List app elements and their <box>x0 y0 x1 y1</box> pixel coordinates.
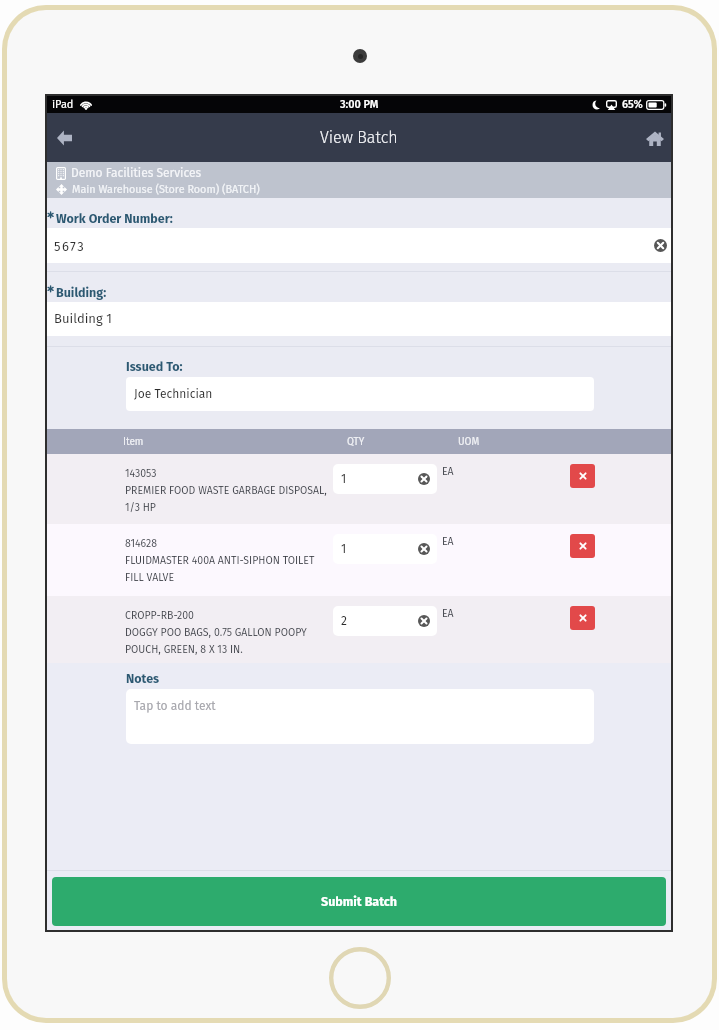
button[interactable]: Remove item <box>570 606 595 630</box>
staticText: EA <box>442 607 454 620</box>
button[interactable]: Tap to add text <box>126 689 594 744</box>
button[interactable]: Home <box>629 113 671 162</box>
staticText: 814628 <box>125 537 158 550</box>
button[interactable]: 5673 <box>47 228 671 263</box>
staticText: FLUIDMASTER 400A ANTI-SIPHON TOILET <box>125 554 315 567</box>
staticText: 65% <box>622 98 643 111</box>
staticText: PREMIER FOOD WASTE GARBAGE DISPOSAL, <box>125 484 327 497</box>
staticText: Issued To: <box>126 359 183 374</box>
staticText: 1 <box>341 472 347 486</box>
button[interactable]: 1 <box>333 464 437 494</box>
staticText: Notes <box>126 671 160 686</box>
staticText: Building: <box>56 285 107 300</box>
staticText: Joe Technician <box>134 387 213 401</box>
staticText: CROPP-RB-200 <box>125 609 194 622</box>
staticText: POUCH, GREEN, 8 X 13 IN. <box>125 643 243 656</box>
staticText: 3:00 PM <box>340 98 379 111</box>
button[interactable]: Building 1 <box>47 302 671 336</box>
staticText: Item <box>123 436 144 448</box>
staticText: Work Order Number: <box>56 211 173 226</box>
staticText: Main Warehouse (Store Room) (BATCH) <box>72 183 260 196</box>
staticText: UOM <box>458 436 480 448</box>
button[interactable]: 2 <box>333 606 437 636</box>
button[interactable]: Back <box>47 113 87 162</box>
staticText: View Batch <box>320 128 398 147</box>
staticText: iPad <box>52 98 74 111</box>
staticText: 1 <box>341 542 347 556</box>
staticText: 1/3 HP <box>125 501 156 514</box>
staticText: FILL VALVE <box>125 571 175 584</box>
button[interactable]: Remove item <box>570 534 595 558</box>
staticText: QTY <box>347 436 365 448</box>
button[interactable]: Remove item <box>570 464 595 488</box>
staticText: 143053 <box>125 467 157 480</box>
staticText: EA <box>442 535 454 548</box>
button[interactable]: Submit Batch <box>52 877 666 926</box>
staticText: Tap to add text <box>134 699 216 713</box>
staticText: 2 <box>341 614 347 628</box>
button[interactable]: Joe Technician <box>126 377 594 411</box>
staticText: EA <box>442 465 454 478</box>
staticText: Building 1 <box>54 311 112 327</box>
staticText: 5673 <box>54 239 86 255</box>
staticText: Submit Batch <box>321 894 398 909</box>
staticText: Demo Facilities Services <box>71 166 202 180</box>
button[interactable]: 1 <box>333 534 437 564</box>
staticText: DOGGY POO BAGS, 0.75 GALLON POOPY <box>125 626 307 639</box>
